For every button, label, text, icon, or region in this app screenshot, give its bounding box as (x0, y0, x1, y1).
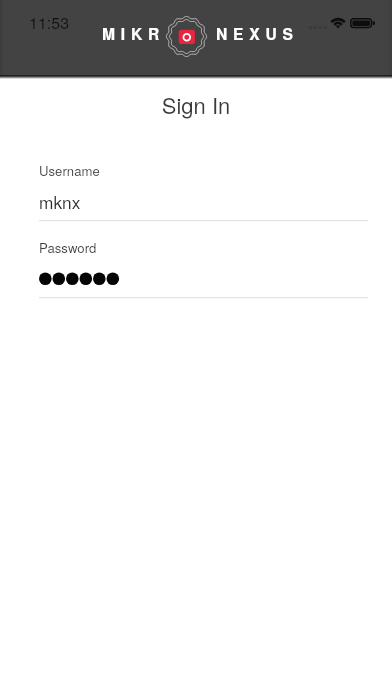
other: Cellular signal (308, 25, 327, 30)
button[interactable]: Mikro Nexus logo (165, 15, 208, 58)
button[interactable]: Password (39, 235, 368, 300)
button[interactable]: Username (39, 158, 368, 222)
staticText: NEXUS (216, 22, 299, 44)
other: Wi-Fi (330, 18, 347, 29)
staticText: Sign In (0, 89, 392, 121)
staticText: mknx (39, 189, 81, 214)
staticText: MIKR (102, 22, 166, 44)
other: Battery (350, 18, 377, 30)
staticText: Username (39, 161, 100, 180)
staticText: Password (39, 238, 97, 257)
staticText: 11:53 (29, 11, 70, 34)
